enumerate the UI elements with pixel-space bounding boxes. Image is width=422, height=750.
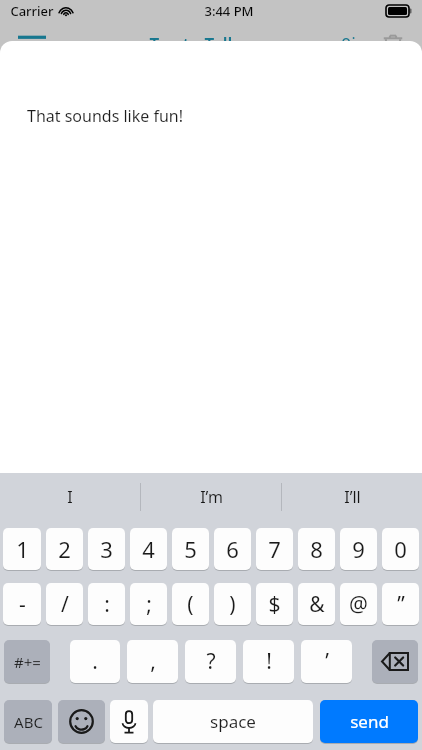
staticText: ( — [187, 590, 194, 619]
button[interactable]: : — [88, 583, 125, 625]
other: Dictate — [110, 700, 148, 743]
button[interactable]: send — [320, 700, 418, 743]
button[interactable]: I’ll — [282, 473, 422, 521]
staticText: / — [61, 590, 69, 619]
button[interactable]: 5 — [172, 528, 209, 570]
staticText: Tap to Talk — [149, 33, 238, 56]
staticText: $ — [268, 590, 281, 619]
button[interactable]: ? — [185, 640, 236, 683]
button[interactable]: Menu — [18, 32, 46, 56]
staticText: space — [210, 710, 256, 733]
other: Emoji — [58, 700, 105, 743]
button[interactable] — [58, 700, 105, 743]
button[interactable]: I — [0, 473, 140, 521]
staticText: 8 — [310, 534, 323, 564]
staticText: I’m — [200, 486, 223, 508]
button[interactable]: 9 — [340, 528, 377, 570]
staticText: ! — [266, 647, 272, 676]
staticText: : — [104, 590, 110, 619]
staticText: I’ll — [344, 486, 361, 508]
button[interactable]: 2 — [46, 528, 83, 570]
staticText: - — [19, 590, 26, 619]
staticText: @ — [349, 590, 368, 619]
staticText: ” — [397, 590, 405, 619]
staticText: 0i — [341, 32, 356, 57]
button[interactable]: 0 — [382, 528, 419, 570]
staticText: That sounds like fun! — [27, 105, 184, 127]
staticText: 7 — [268, 534, 281, 564]
button[interactable]: 6 — [214, 528, 251, 570]
button[interactable] — [110, 700, 148, 743]
button[interactable]: ’ — [301, 640, 352, 683]
staticText: ) — [229, 590, 236, 619]
staticText: 4 — [142, 534, 155, 564]
button[interactable]: 1 — [3, 528, 41, 570]
staticText: ABC — [14, 712, 43, 732]
button[interactable]: #+= — [4, 640, 50, 683]
staticText: 3 — [100, 534, 113, 564]
staticText: ; — [146, 590, 152, 619]
staticText: , — [150, 647, 156, 676]
button[interactable]: ABC — [4, 700, 52, 743]
button[interactable]: 7 — [256, 528, 293, 570]
button[interactable]: - — [3, 583, 41, 625]
button[interactable]: 8 — [298, 528, 335, 570]
button[interactable]: & — [298, 583, 335, 625]
button[interactable] — [372, 640, 418, 683]
staticText: & — [309, 590, 325, 619]
button[interactable]: , — [127, 640, 178, 683]
staticText: send — [350, 710, 389, 733]
button[interactable]: ; — [130, 583, 167, 625]
button[interactable]: ( — [172, 583, 209, 625]
staticText: ? — [206, 647, 216, 676]
other: Backspace — [372, 640, 418, 683]
button[interactable]: . — [70, 640, 120, 683]
button[interactable]: @ — [340, 583, 377, 625]
button[interactable]: ) — [214, 583, 251, 625]
button[interactable]: $ — [256, 583, 293, 625]
button[interactable]: Delete — [382, 33, 404, 55]
staticText: 5 — [184, 534, 197, 564]
staticText: 3:44 PM — [204, 2, 254, 20]
button[interactable]: 4 — [130, 528, 167, 570]
staticText: . — [92, 647, 98, 676]
button[interactable]: / — [46, 583, 83, 625]
staticText: 6 — [226, 534, 239, 564]
button[interactable]: 3 — [88, 528, 125, 570]
staticText: 2 — [58, 534, 71, 564]
button[interactable]: ! — [243, 640, 294, 683]
staticText: ’ — [325, 647, 329, 676]
button[interactable]: ” — [382, 583, 419, 625]
button[interactable]: space — [153, 700, 313, 743]
button[interactable]: I’m — [141, 473, 281, 521]
staticText: 9 — [352, 534, 365, 564]
staticText: #+= — [14, 652, 41, 672]
staticText: Carrier — [10, 2, 54, 20]
staticText: I — [67, 486, 73, 508]
staticText: 0 — [394, 534, 407, 564]
staticText: 1 — [16, 534, 29, 564]
